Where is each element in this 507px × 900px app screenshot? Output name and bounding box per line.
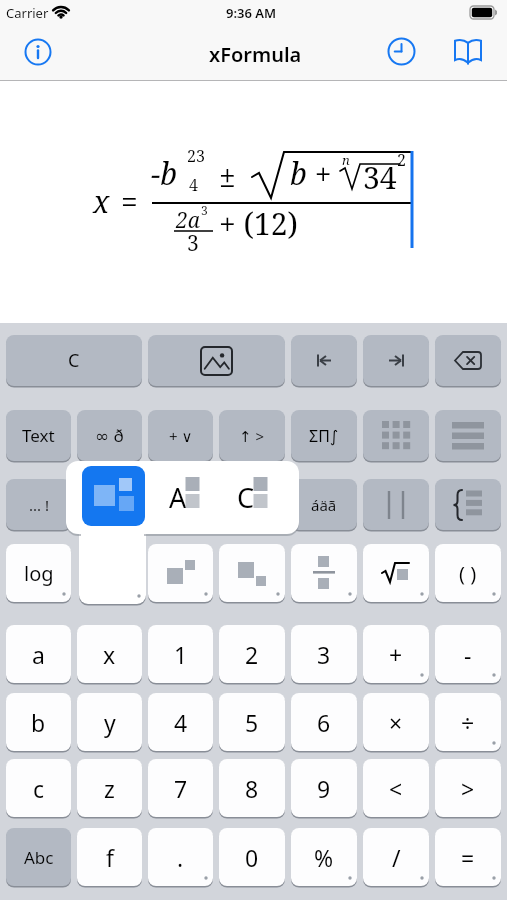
button[interactable]: 5 (219, 693, 285, 751)
button[interactable] (148, 544, 213, 602)
button[interactable]: ∞ ð (77, 410, 142, 461)
button[interactable] (435, 479, 501, 530)
button[interactable] (219, 479, 285, 530)
button[interactable]: áäã (291, 479, 357, 530)
button[interactable] (291, 544, 357, 602)
staticText: y (104, 707, 116, 738)
staticText: 6 (317, 707, 331, 738)
staticText: a (32, 639, 45, 670)
staticText: Carrier (6, 4, 49, 22)
staticText: b + (290, 153, 332, 194)
button[interactable]: 2 (219, 625, 285, 683)
staticText: ∞ ð (95, 424, 124, 447)
button[interactable]: z (77, 759, 142, 817)
button[interactable] (363, 544, 429, 602)
button[interactable]: 4 (148, 693, 213, 751)
button[interactable]: 9 (291, 759, 357, 817)
staticText: 7 (174, 773, 188, 804)
staticText: 3 (187, 229, 199, 258)
staticText: Abc (24, 846, 54, 869)
staticText: −b (151, 153, 178, 194)
staticText: + (389, 639, 403, 670)
button[interactable] (363, 479, 429, 530)
button[interactable] (82, 466, 145, 526)
button[interactable]: 3 (291, 625, 357, 683)
button[interactable]: y (77, 693, 142, 751)
staticText: ± (219, 155, 236, 196)
button[interactable]: + ∨ (148, 410, 213, 461)
button[interactable]: ↑ > (219, 410, 285, 461)
staticText: 23 (187, 145, 205, 167)
button[interactable] (148, 335, 285, 386)
staticText: = (461, 842, 475, 873)
button[interactable]: . (148, 828, 213, 886)
staticText: z (104, 773, 115, 804)
button[interactable]: c (6, 759, 71, 817)
button[interactable] (435, 335, 501, 386)
button[interactable] (24, 38, 52, 66)
staticText: ΣΠ∫ (309, 425, 339, 447)
staticText: + (12) (219, 203, 298, 244)
button[interactable]: a (6, 625, 71, 683)
button[interactable]: b (6, 693, 71, 751)
staticText: 9:36 AM (226, 4, 277, 22)
button[interactable]: x (77, 625, 142, 683)
staticText: áäã (311, 495, 337, 515)
button[interactable] (77, 479, 142, 530)
button[interactable]: = (435, 828, 501, 886)
button[interactable]: ÷ (435, 693, 501, 751)
button[interactable] (291, 335, 357, 386)
button[interactable]: > (435, 759, 501, 817)
staticText: > (461, 773, 475, 804)
button[interactable]: C (232, 469, 292, 525)
button[interactable]: ... ! (6, 479, 71, 530)
button[interactable] (453, 38, 483, 65)
staticText: × (389, 707, 403, 738)
button[interactable]: Abc (6, 828, 71, 886)
button[interactable]: 7 (148, 759, 213, 817)
button[interactable]: A (164, 469, 224, 525)
button[interactable]: × (363, 693, 429, 751)
button[interactable]: 8 (219, 759, 285, 817)
staticText: . (177, 842, 184, 873)
button[interactable] (435, 410, 501, 461)
button[interactable]: < (363, 759, 429, 817)
staticText: - (464, 639, 472, 670)
button[interactable] (387, 37, 416, 66)
button[interactable] (219, 544, 285, 602)
button[interactable]: / (363, 828, 429, 886)
button[interactable]: + (363, 625, 429, 683)
button[interactable]: Text (6, 410, 71, 461)
button[interactable]: ( ) (435, 544, 501, 602)
staticText: C (68, 348, 80, 373)
staticText: = (121, 181, 138, 222)
staticText: ( ) (459, 560, 477, 587)
button[interactable]: 6 (291, 693, 357, 751)
staticText: n (342, 151, 350, 169)
staticText: 3 (201, 202, 208, 218)
button[interactable] (363, 335, 429, 386)
button[interactable]: 1 (148, 625, 213, 683)
button[interactable]: - (435, 625, 501, 683)
staticText: + ∨ (169, 426, 193, 446)
button[interactable]: ΣΠ∫ (291, 410, 357, 461)
staticText: C (237, 479, 255, 516)
staticText: % (314, 842, 334, 873)
button[interactable] (148, 479, 213, 530)
staticText: A (169, 479, 187, 516)
staticText: 0 (245, 842, 259, 873)
button[interactable]: % (291, 828, 357, 886)
staticText: 34 (363, 157, 397, 198)
staticText: f (106, 842, 114, 873)
staticText: 3 (317, 639, 331, 670)
button[interactable]: 0 (219, 828, 285, 886)
button[interactable] (363, 410, 429, 461)
button[interactable]: C (6, 335, 142, 386)
staticText: x (93, 181, 110, 222)
button[interactable]: f (77, 828, 142, 886)
staticText: ↑ > (239, 426, 265, 446)
staticText: 5 (245, 707, 259, 738)
button[interactable]: log (6, 544, 71, 602)
staticText: c (33, 773, 45, 804)
staticText: 2a (176, 206, 200, 235)
